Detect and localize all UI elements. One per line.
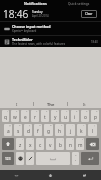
button[interactable]: Back xyxy=(0,170,33,180)
button[interactable]: # xyxy=(14,124,22,136)
button[interactable]: - xyxy=(66,124,75,136)
button[interactable]: Space xyxy=(36,152,70,165)
button[interactable]: Emoji xyxy=(16,152,24,165)
staticText: !? xyxy=(75,154,77,157)
button[interactable]: 3 xyxy=(21,110,29,122)
button[interactable]: 4 xyxy=(31,110,39,122)
button[interactable]: + xyxy=(77,124,86,136)
button[interactable]: I xyxy=(0,100,33,108)
button[interactable]: The xyxy=(34,100,67,108)
staticText: z xyxy=(19,142,22,149)
staticText: i xyxy=(74,114,76,121)
staticText: g xyxy=(47,128,50,135)
staticText: The fastest news, with colorful features xyxy=(12,42,66,46)
staticText: f xyxy=(37,128,39,135)
staticText: & xyxy=(50,124,52,127)
staticText: ; xyxy=(62,138,63,141)
staticText: " xyxy=(32,138,33,141)
staticText: 7 xyxy=(66,110,68,113)
button[interactable]: / xyxy=(66,138,74,150)
button[interactable]: 5 xyxy=(41,110,49,122)
staticText: x xyxy=(29,142,32,149)
staticText: ( xyxy=(94,124,95,127)
staticText: 2 xyxy=(16,110,18,113)
staticText: h xyxy=(58,128,61,135)
button[interactable]: Home xyxy=(33,170,67,180)
staticText: 18:40 xyxy=(91,40,98,44)
staticText: k xyxy=(80,128,83,135)
button[interactable]: ; xyxy=(56,138,64,150)
staticText: ! xyxy=(22,138,23,141)
staticText: Choose input method xyxy=(12,24,51,29)
staticText: * xyxy=(61,124,63,127)
staticText: j xyxy=(70,128,72,135)
staticText: b xyxy=(59,142,62,149)
button[interactable]: Symbols xyxy=(2,152,14,165)
button[interactable]: ! xyxy=(16,138,24,150)
button[interactable]: Clear xyxy=(81,10,97,18)
staticText: / xyxy=(72,138,73,141)
button[interactable]: 0 xyxy=(91,110,99,122)
button[interactable]: ( xyxy=(88,124,97,136)
button[interactable]: * xyxy=(55,124,64,136)
staticText: s xyxy=(17,128,20,135)
staticText: Clear xyxy=(85,12,93,16)
button[interactable]: Choose input method xyxy=(0,22,101,35)
button[interactable]: " xyxy=(26,138,34,150)
staticText: 8 xyxy=(76,110,78,113)
staticText: 0 xyxy=(96,110,98,113)
staticText: 18:46 xyxy=(3,7,29,21)
staticText: 5 xyxy=(46,110,48,113)
staticText: y xyxy=(54,114,57,121)
button[interactable]: @ xyxy=(4,124,12,136)
staticText: $ xyxy=(29,124,31,127)
button[interactable]: Backspace xyxy=(86,138,99,150)
button[interactable]: Handwriting xyxy=(26,152,34,165)
button[interactable]: % xyxy=(34,124,42,136)
button[interactable]: It xyxy=(68,100,101,108)
staticText: Quick settings xyxy=(68,2,90,6)
staticText: q xyxy=(4,114,7,121)
staticText: TechniSider xyxy=(12,37,33,42)
staticText: : xyxy=(52,138,53,141)
button[interactable]: TechniSider xyxy=(0,36,101,47)
staticText: - xyxy=(72,124,73,127)
button[interactable]: : xyxy=(46,138,54,150)
button[interactable]: ? xyxy=(76,138,84,150)
staticText: w xyxy=(13,114,17,121)
staticText: 9 xyxy=(86,110,88,113)
staticText: Notifications xyxy=(24,1,47,6)
staticText: e xyxy=(24,114,27,121)
staticText: t xyxy=(44,114,46,121)
staticText: 6 xyxy=(56,110,58,113)
staticText: @ xyxy=(9,124,12,127)
staticText: p xyxy=(94,114,97,121)
staticText: r xyxy=(34,114,36,121)
button[interactable]: 6 xyxy=(51,110,59,122)
button[interactable]: $ xyxy=(24,124,32,136)
button[interactable]: 9 xyxy=(81,110,89,122)
staticText: # xyxy=(19,124,21,127)
staticText: I xyxy=(16,102,18,107)
staticText: % xyxy=(39,124,41,127)
button[interactable]: & xyxy=(44,124,53,136)
button[interactable]: 7 xyxy=(61,110,69,122)
staticText: n xyxy=(69,142,72,149)
button[interactable]: ' xyxy=(36,138,44,150)
button[interactable]: Period xyxy=(72,152,79,165)
staticText: ' xyxy=(42,138,43,141)
button[interactable]: Recents xyxy=(67,170,101,180)
button[interactable]: Shift xyxy=(2,138,14,150)
button[interactable]: 1 xyxy=(2,110,9,122)
staticText: u xyxy=(64,114,67,121)
button[interactable]: Quick settings xyxy=(66,1,92,7)
button[interactable]: 8 xyxy=(71,110,79,122)
staticText: c xyxy=(39,142,42,149)
staticText: v xyxy=(49,142,52,149)
staticText: 123 xyxy=(5,157,11,161)
button[interactable]: 2 xyxy=(11,110,19,122)
staticText: Sunday xyxy=(32,10,43,14)
button[interactable]: Enter xyxy=(81,152,99,165)
staticText: ? xyxy=(82,138,83,141)
staticText: . xyxy=(75,157,77,163)
